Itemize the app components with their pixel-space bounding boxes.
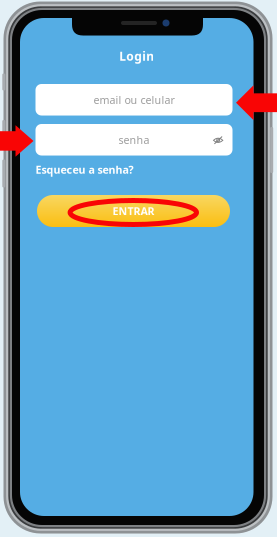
staticText: email ou celular bbox=[93, 93, 174, 107]
button[interactable]: email ou celular bbox=[35, 84, 232, 115]
staticText: Esqueceu a senha? bbox=[35, 162, 133, 177]
button[interactable]: ENTRAR bbox=[37, 195, 230, 227]
staticText: ENTRAR bbox=[112, 204, 154, 218]
button[interactable]: senha bbox=[35, 124, 232, 155]
staticText: Login bbox=[119, 48, 154, 64]
staticText: senha bbox=[118, 133, 149, 147]
button[interactable]: Esqueceu a senha? bbox=[35, 163, 232, 176]
